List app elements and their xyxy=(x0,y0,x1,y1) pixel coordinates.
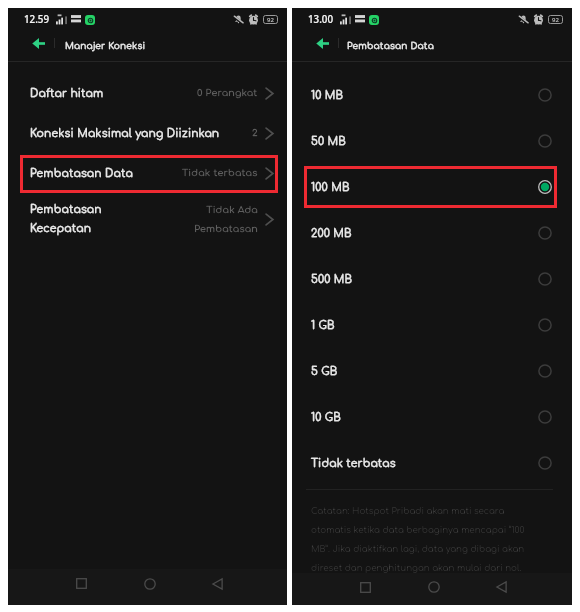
button[interactable]: Daftar hitam xyxy=(8,73,287,113)
staticText: Catatan: Hotspot Pribadi akan mati secar… xyxy=(311,506,525,573)
button[interactable]: Tidak terbatas xyxy=(292,440,572,486)
button[interactable]: Home xyxy=(417,571,450,603)
staticText: 50 MB xyxy=(311,135,346,147)
button[interactable]: Pembatasan Data xyxy=(8,153,287,193)
other: Silent mode xyxy=(518,14,529,25)
staticText: 500 MB xyxy=(311,273,353,285)
button[interactable]: Recent apps xyxy=(349,571,382,603)
staticText: 0 Perangkat xyxy=(197,88,258,99)
button[interactable]: 50 MB xyxy=(292,118,572,164)
staticText: 100 MB xyxy=(311,181,350,193)
button[interactable]: Recent apps xyxy=(65,567,98,600)
button[interactable]: 10 MB xyxy=(292,72,572,118)
staticText: Koneksi Maksimal yang Diizinkan xyxy=(30,127,220,139)
staticText: 5 GB xyxy=(311,365,338,377)
other: Alarm xyxy=(533,14,544,25)
button[interactable]: 500 MB xyxy=(292,256,572,302)
staticText: Tidak terbatas xyxy=(311,457,396,469)
staticText: 200 MB xyxy=(311,227,352,239)
staticText: 12.59 xyxy=(24,13,50,26)
staticText: Pembatasan Kecepatan xyxy=(30,203,102,235)
other: Silent mode xyxy=(233,14,244,25)
staticText: Manajer Koneksi xyxy=(65,41,146,51)
button[interactable]: 5 GB xyxy=(292,348,572,394)
button[interactable]: Back xyxy=(18,30,58,56)
button[interactable]: Back xyxy=(201,567,234,600)
staticText: Tidak terbatas xyxy=(182,168,258,179)
button[interactable]: 100 MB xyxy=(292,164,572,210)
staticText: 2 xyxy=(252,128,258,139)
button[interactable]: Koneksi Maksimal yang Diizinkan xyxy=(8,113,287,153)
other: Alarm xyxy=(248,14,259,25)
staticText: Daftar hitam xyxy=(30,87,104,99)
button[interactable]: Back xyxy=(485,571,518,603)
staticText: 92 xyxy=(267,16,274,24)
button[interactable]: 200 MB xyxy=(292,210,572,256)
staticText: Pembatasan Data xyxy=(347,41,434,51)
button[interactable]: Home xyxy=(133,567,166,600)
staticText: 10 MB xyxy=(311,89,344,101)
button[interactable]: Pembatasan Kecepatan xyxy=(8,193,287,245)
staticText: Pembatasan Data xyxy=(30,167,133,179)
staticText: 10 GB xyxy=(311,411,341,423)
staticText: 13.00 xyxy=(308,13,334,26)
staticText: Tidak Ada Pembatasan xyxy=(194,205,258,234)
staticText: 1 GB xyxy=(311,319,335,331)
staticText: 92 xyxy=(552,16,559,24)
button[interactable]: 10 GB xyxy=(292,394,572,440)
button[interactable]: Back xyxy=(302,30,342,56)
button[interactable]: 1 GB xyxy=(292,302,572,348)
